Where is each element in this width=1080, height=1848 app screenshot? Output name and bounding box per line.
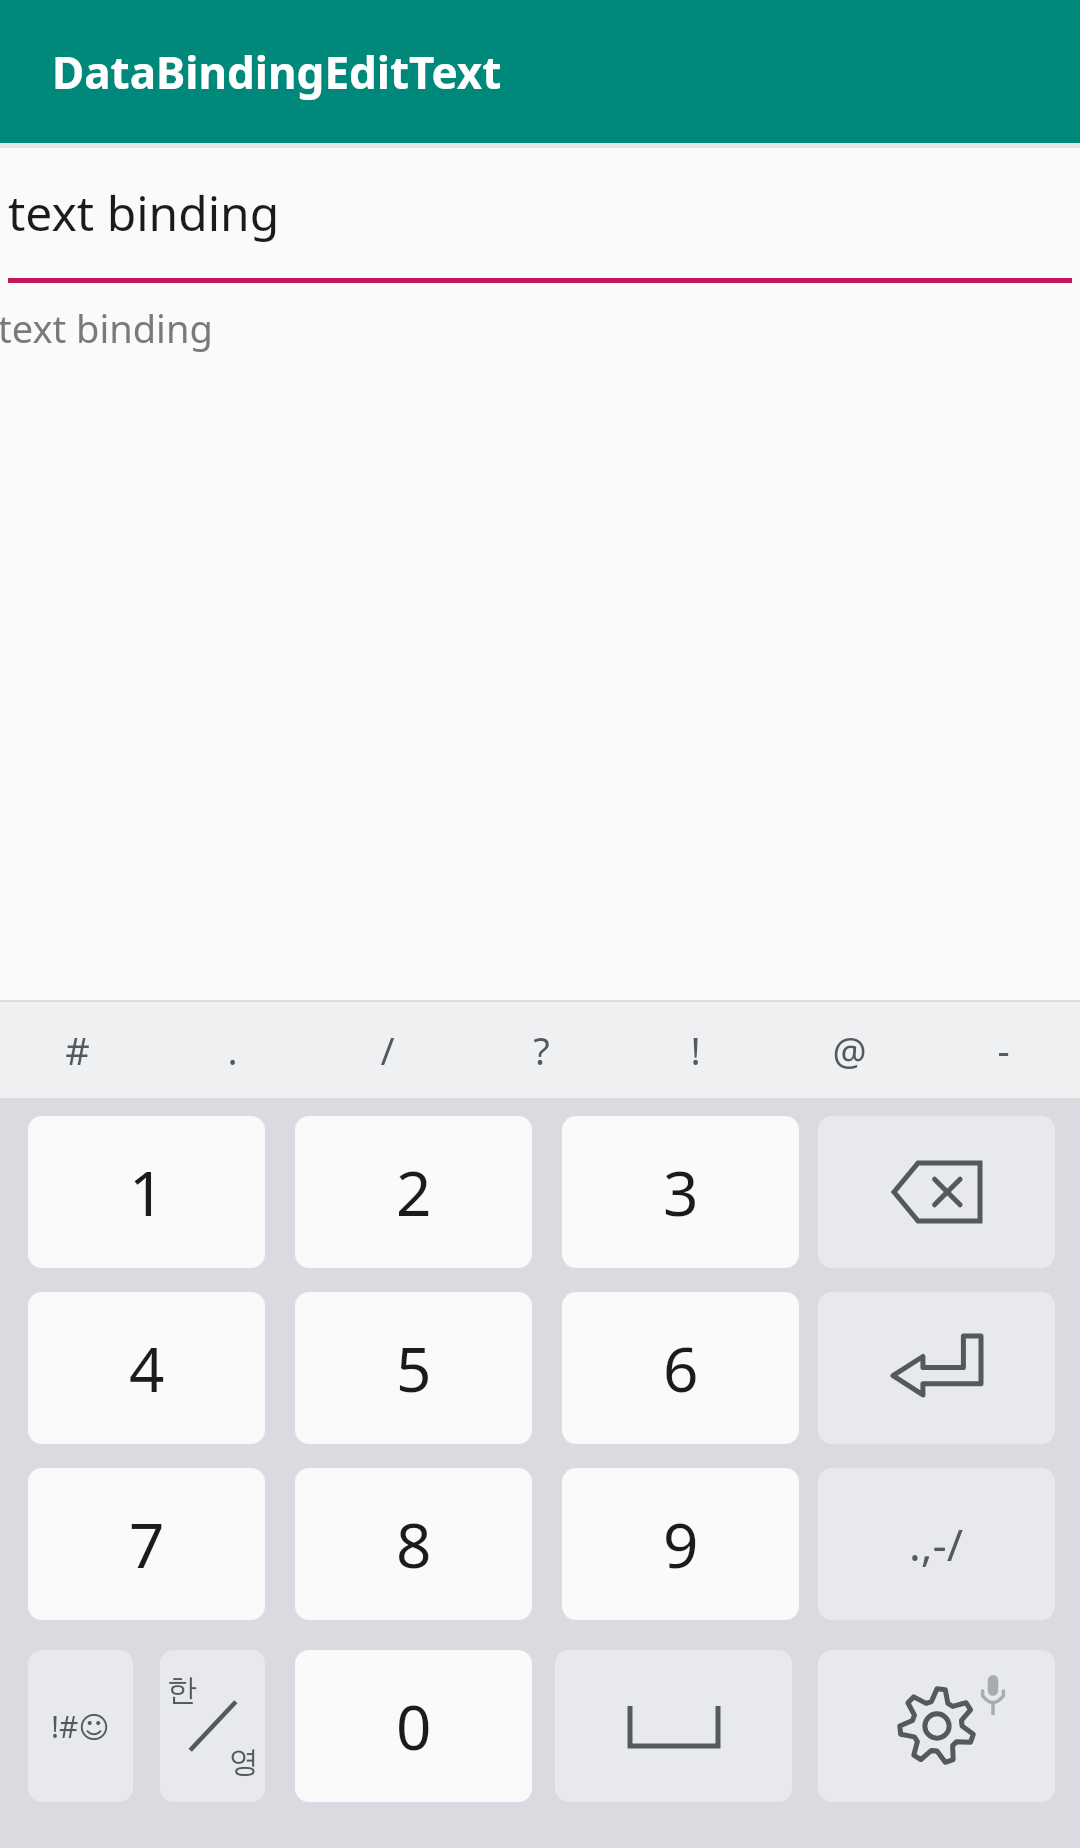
staticText: 3 [663,1150,699,1234]
button[interactable]: ? [464,1002,618,1098]
staticText: 5 [396,1326,432,1410]
staticText: text binding [0,302,213,354]
button[interactable]: # [0,1002,155,1098]
staticText: !#☺ [51,1706,110,1747]
staticText: ? [533,1024,550,1076]
staticText: 8 [396,1502,432,1586]
staticText: 7 [129,1502,165,1586]
button[interactable]: text binding [0,148,1080,288]
staticText: 0 [396,1684,432,1768]
staticText: text binding [8,180,280,245]
button[interactable]: Enter [818,1292,1055,1444]
staticText: . [227,1024,238,1076]
button[interactable]: 0 [295,1650,532,1802]
button[interactable]: ! [618,1002,772,1098]
button[interactable]: 4 [28,1292,265,1444]
staticText: 1 [129,1150,165,1234]
staticText: 9 [663,1502,699,1586]
button[interactable]: 5 [295,1292,532,1444]
staticText: 한 [167,1671,197,1709]
button[interactable]: 2 [295,1116,532,1268]
staticText: 6 [663,1326,699,1410]
button[interactable]: . [155,1002,310,1098]
button[interactable]: Backspace [818,1116,1055,1268]
button[interactable]: 6 [562,1292,799,1444]
button[interactable]: 1 [28,1116,265,1268]
button[interactable]: 3 [562,1116,799,1268]
button[interactable]: 8 [295,1468,532,1620]
button[interactable]: Settings [818,1650,1055,1802]
staticText: 2 [396,1150,432,1234]
staticText: DataBindingEditText [52,42,502,102]
staticText: 4 [129,1326,165,1410]
staticText: 영 [229,1743,259,1781]
button[interactable]: - [926,1002,1080,1098]
button[interactable]: Korean English toggle [160,1650,265,1802]
button[interactable]: / [310,1002,464,1098]
staticText: ! [690,1024,701,1076]
button[interactable]: .,-/ [818,1468,1055,1620]
staticText: # [65,1024,90,1076]
staticText: .,-/ [909,1514,964,1574]
button[interactable]: !#☺ [28,1650,133,1802]
staticText: - [997,1024,1010,1076]
button[interactable]: Space [555,1650,792,1802]
staticText: @ [832,1024,867,1076]
button[interactable]: 9 [562,1468,799,1620]
button[interactable]: 7 [28,1468,265,1620]
staticText: / [380,1024,395,1076]
button[interactable]: @ [772,1002,926,1098]
